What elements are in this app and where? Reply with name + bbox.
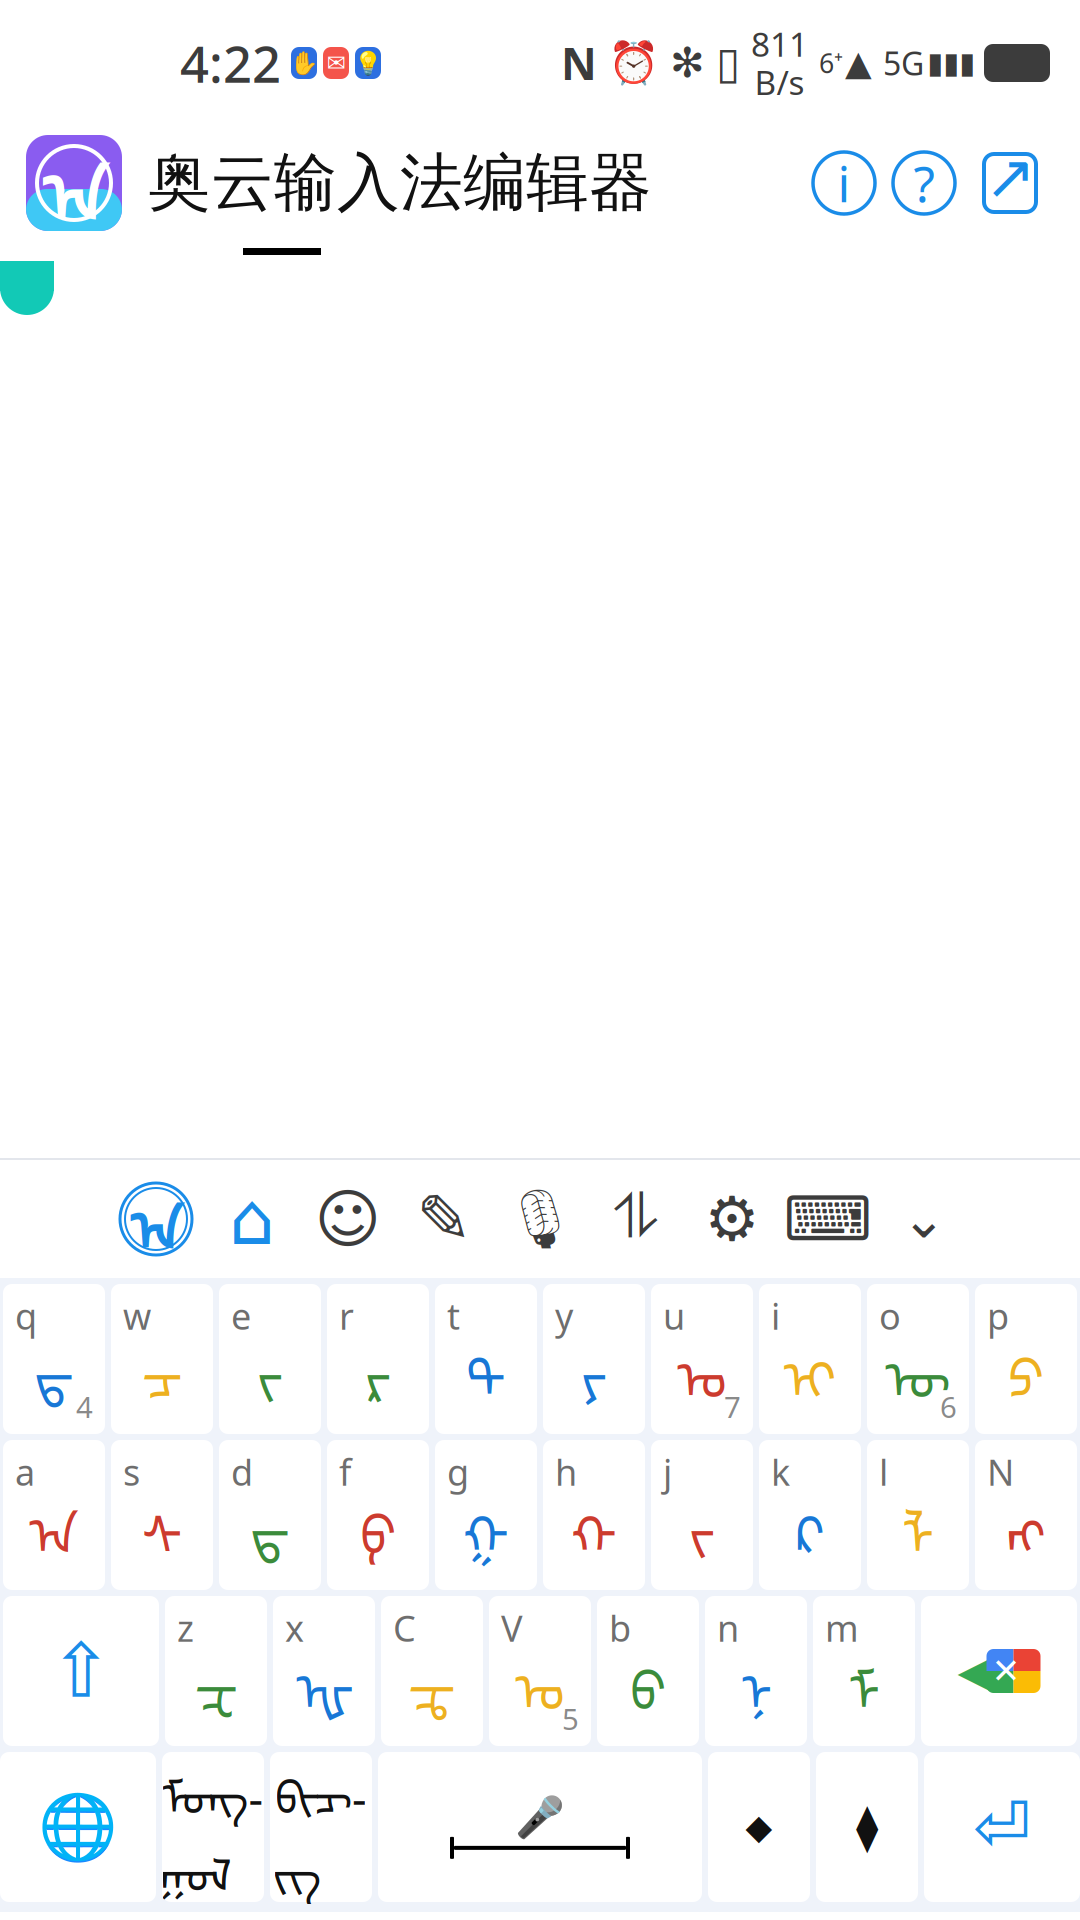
button[interactable]: Handwriting	[396, 1171, 492, 1267]
button[interactable]: t	[435, 1284, 537, 1434]
button[interactable]: s	[111, 1440, 213, 1590]
button[interactable]: r	[327, 1284, 429, 1434]
staticText: e	[231, 1292, 251, 1340]
button[interactable]: j	[651, 1440, 753, 1590]
staticText: 🌐	[38, 1790, 118, 1863]
button[interactable]: i	[759, 1284, 861, 1434]
staticText: l	[879, 1448, 888, 1496]
staticText: ✻	[670, 39, 705, 86]
staticText: r	[339, 1292, 354, 1340]
button[interactable]: N	[975, 1440, 1077, 1590]
staticText: d	[231, 1448, 253, 1496]
button[interactable]: Settings	[684, 1171, 780, 1267]
staticText: ᠩ	[1006, 1478, 1045, 1569]
button[interactable]: y	[543, 1284, 645, 1434]
button[interactable]: h	[543, 1440, 645, 1590]
staticText: ᠶ	[581, 1322, 607, 1413]
staticText: ᠠ	[42, 124, 106, 242]
staticText: a	[15, 1448, 35, 1496]
staticText: ᠳ	[250, 1478, 290, 1569]
button[interactable]: Home	[204, 1171, 300, 1267]
staticText: ⚙	[704, 1184, 759, 1254]
button[interactable]: V	[489, 1596, 591, 1746]
staticText: p	[987, 1292, 1009, 1340]
staticText: ?	[913, 150, 934, 216]
button[interactable]: w	[111, 1284, 213, 1434]
staticText: y	[555, 1292, 573, 1340]
staticText: ᠫ	[1008, 1322, 1044, 1413]
staticText: f	[339, 1448, 351, 1496]
button[interactable]: l	[867, 1440, 969, 1590]
button[interactable]: Switch language	[0, 1752, 156, 1902]
staticText: ᠽ	[194, 1634, 237, 1725]
button[interactable]: Emoji	[300, 1171, 396, 1267]
button[interactable]: d	[219, 1440, 321, 1590]
button[interactable]: Symbols	[816, 1752, 918, 1902]
staticText: q	[15, 1292, 37, 1340]
button[interactable]: n	[705, 1596, 807, 1746]
button[interactable]: Shift	[3, 1596, 159, 1746]
staticText: 奥云输入法编辑器	[148, 144, 652, 221]
staticText: ⌄	[901, 1189, 946, 1249]
staticText: 4:22	[180, 29, 281, 97]
button[interactable]: Keyboard layout	[780, 1171, 876, 1267]
button[interactable]: e	[219, 1284, 321, 1434]
staticText: 5G	[883, 42, 924, 84]
button[interactable]: m	[813, 1596, 915, 1746]
staticText: ᠴ	[141, 1322, 182, 1413]
button[interactable]: u	[651, 1284, 753, 1434]
button[interactable]: Share	[588, 1171, 684, 1267]
staticText: ᠲ	[466, 1322, 506, 1413]
staticText: ◆	[745, 1807, 772, 1847]
staticText: ☺	[314, 1183, 381, 1255]
button[interactable]: App icon	[26, 135, 122, 231]
staticText: ᠮ	[848, 1634, 880, 1725]
staticText: ⥮	[613, 1189, 658, 1249]
button[interactable]: f	[327, 1440, 429, 1590]
staticText: V	[501, 1604, 523, 1652]
staticText: 💡	[354, 50, 382, 76]
staticText: t	[447, 1292, 460, 1340]
staticText: C	[393, 1604, 416, 1652]
button[interactable]: Information	[804, 143, 884, 223]
button[interactable]: Hide keyboard	[876, 1171, 972, 1267]
button[interactable]: b	[597, 1596, 699, 1746]
staticText: ◀	[957, 1645, 992, 1697]
staticText: h	[555, 1448, 577, 1496]
staticText: 4	[76, 1387, 93, 1426]
button[interactable]: a	[3, 1440, 105, 1590]
staticText: ⇧	[49, 1629, 112, 1713]
button[interactable]: Return	[924, 1752, 1080, 1902]
staticText: i	[837, 150, 850, 216]
button[interactable]: Voice input	[492, 1171, 588, 1267]
staticText: ⌂	[229, 1178, 275, 1260]
staticText: ᠮᠣᠩᠭᠣᠯ	[162, 1750, 263, 1904]
button[interactable]: o	[867, 1284, 969, 1434]
button[interactable]: p	[975, 1284, 1077, 1434]
staticText: ▲	[845, 43, 872, 83]
staticText: N	[561, 34, 597, 92]
button[interactable]: Script	[270, 1752, 372, 1902]
button[interactable]: z	[165, 1596, 267, 1746]
button[interactable]: Space	[378, 1752, 702, 1902]
button[interactable]: k	[759, 1440, 861, 1590]
button[interactable]: q	[3, 1284, 105, 1434]
staticText: ᠰ	[142, 1478, 182, 1569]
button[interactable]: Help	[884, 143, 964, 223]
staticText: m	[825, 1604, 859, 1652]
button[interactable]: x	[273, 1596, 375, 1746]
staticText: 5	[562, 1699, 579, 1738]
button[interactable]: Delete	[921, 1596, 1077, 1746]
button[interactable]: Mongolian	[162, 1752, 264, 1902]
staticText: ᠷ	[365, 1322, 391, 1413]
staticText: 7	[724, 1387, 741, 1426]
button[interactable]: Share	[964, 137, 1056, 229]
staticText: ᠤ	[677, 1322, 727, 1413]
staticText: ᠺ	[795, 1478, 824, 1569]
button[interactable]: C	[381, 1596, 483, 1746]
button[interactable]: Punctuation	[708, 1752, 810, 1902]
staticText: ᠤ	[515, 1634, 565, 1725]
button[interactable]: Mongolian input	[108, 1171, 204, 1267]
button[interactable]: g	[435, 1440, 537, 1590]
staticText: ✉	[326, 50, 345, 76]
